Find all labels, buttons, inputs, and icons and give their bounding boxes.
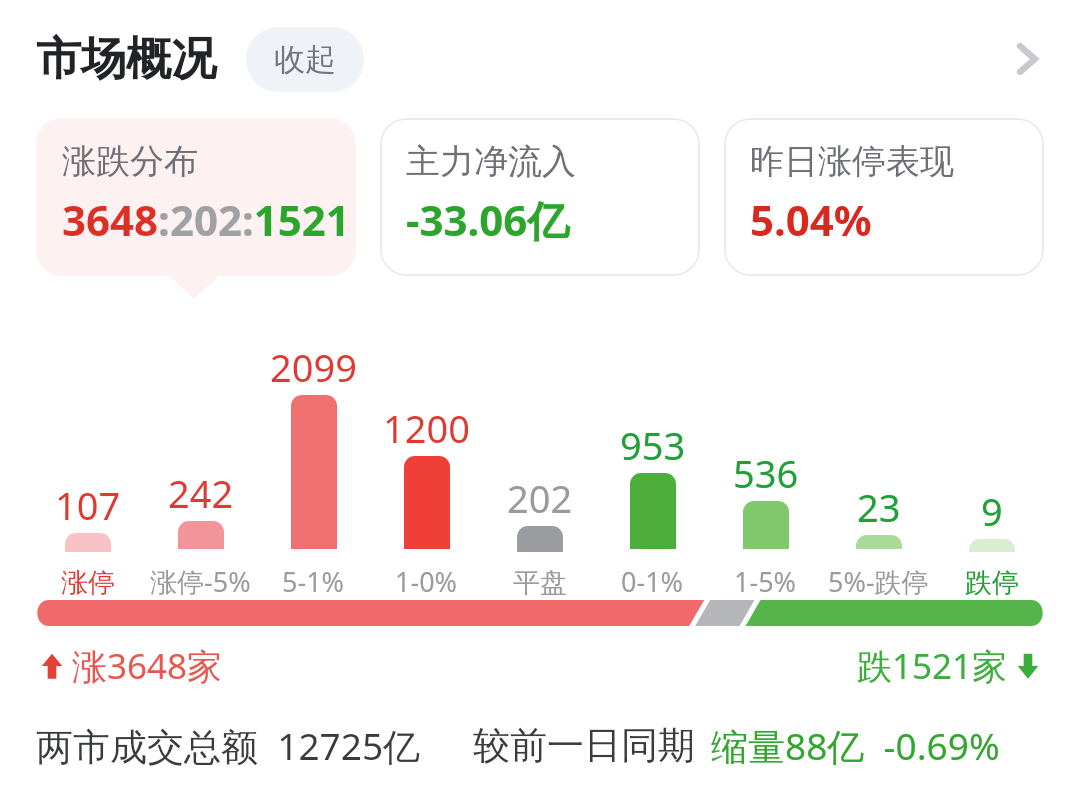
staticText: 242 bbox=[168, 467, 234, 519]
staticText: 两市成交总额 12725亿 bbox=[36, 720, 421, 771]
staticText: 涨3648家 bbox=[72, 642, 223, 690]
staticText: 1200 bbox=[383, 402, 470, 454]
staticText: 2099 bbox=[270, 341, 357, 393]
staticText: 跌停 bbox=[965, 566, 1019, 600]
staticText: 市场概况 bbox=[36, 31, 216, 88]
staticText: 涨跌分布 bbox=[62, 140, 198, 183]
button[interactable]: 收起 bbox=[246, 27, 364, 92]
staticText: 涨停 bbox=[61, 566, 115, 600]
button[interactable]: 涨跌分布 bbox=[36, 118, 356, 276]
staticText: 953 bbox=[620, 419, 686, 471]
staticText: 跌1521家 bbox=[857, 642, 1008, 690]
staticText: 平盘 bbox=[513, 566, 567, 600]
staticText: 1-0% bbox=[395, 563, 458, 600]
staticText: 536 bbox=[733, 447, 799, 499]
button[interactable]: 主力净流入 bbox=[380, 118, 700, 276]
staticText: 23 bbox=[857, 481, 901, 533]
staticText: 107 bbox=[55, 479, 121, 531]
staticText: 1-5% bbox=[734, 563, 797, 600]
button[interactable]: 昨日涨停表现 bbox=[724, 118, 1044, 276]
staticText: 主力净流入 bbox=[406, 140, 576, 183]
staticText: 昨日涨停表现 bbox=[750, 140, 954, 183]
staticText: 5%-跌停 bbox=[828, 563, 929, 600]
button[interactable]: Open market overview bbox=[996, 28, 1058, 90]
staticText: -33.06亿 bbox=[406, 191, 570, 248]
staticText: 5.04% bbox=[750, 191, 872, 248]
staticText: 较前一日同期 bbox=[473, 722, 695, 769]
staticText: 收起 bbox=[274, 40, 336, 79]
staticText: 0-1% bbox=[621, 563, 684, 600]
staticText: 涨停-5% bbox=[150, 563, 251, 600]
staticText: 9 bbox=[981, 485, 1003, 537]
staticText: 5-1% bbox=[282, 563, 345, 600]
staticText: 3648:202:1521 bbox=[62, 191, 350, 248]
staticText: 缩量88亿 -0.69% bbox=[711, 720, 1000, 771]
staticText: 202 bbox=[507, 472, 573, 524]
